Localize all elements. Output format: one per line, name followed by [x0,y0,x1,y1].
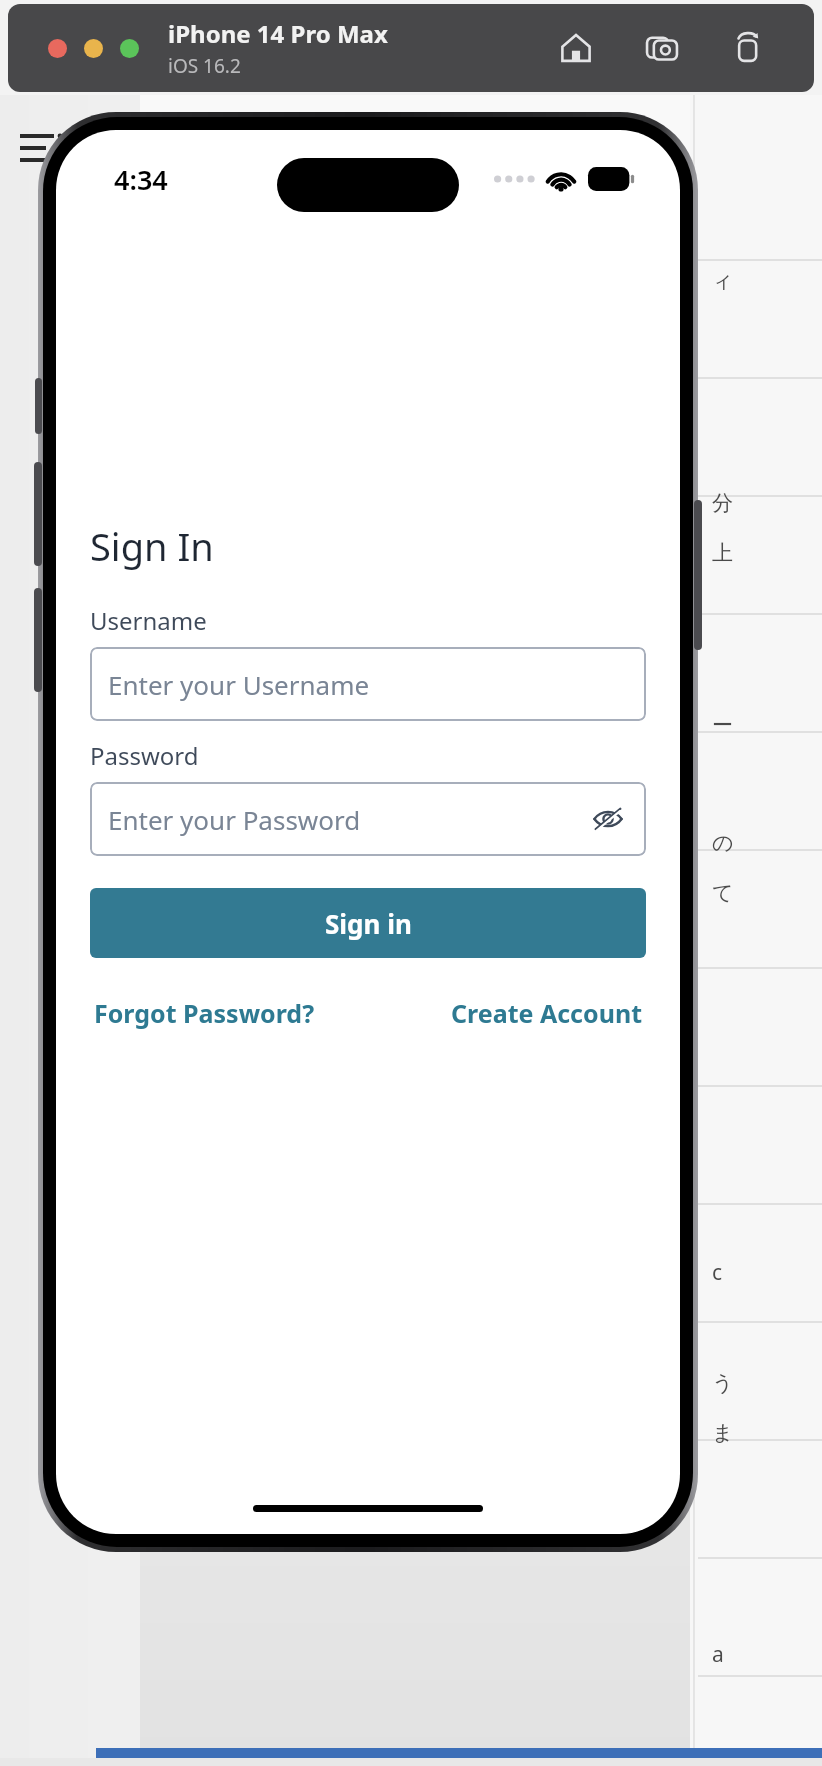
button[interactable]: Close [48,39,67,58]
staticText: 分 [712,490,733,516]
staticText: Forgot Password? [94,996,315,1030]
staticText: Enter your Username [108,667,370,702]
staticText: ま [712,1420,734,1446]
staticText: Password [90,739,199,772]
staticText: Username [90,604,207,637]
staticText: iOS 16.2 [168,53,241,79]
staticText: c [712,1258,723,1287]
staticText: a [712,1640,724,1669]
staticText: Enter your Password [108,802,361,837]
button[interactable]: Zoom [120,39,139,58]
staticText: ー [712,712,733,738]
staticText: ィ [712,268,734,294]
button[interactable]: Enter your Password [90,782,646,856]
staticText: う [712,1370,734,1396]
staticText: Sign In [90,520,214,572]
button[interactable]: Create Account [447,990,646,1036]
button[interactable]: Minimize [84,39,103,58]
button[interactable]: Forgot Password? [90,990,319,1036]
staticText: Sign in [325,906,412,941]
staticText: て [712,880,734,906]
staticText: iPhone 14 Pro Max [168,17,388,50]
button[interactable]: Sign in [90,888,646,958]
staticText: Create Account [451,996,642,1030]
staticText: の [712,830,734,856]
button[interactable]: Home [554,26,598,70]
button[interactable]: Screenshot [640,26,684,70]
staticText: 上 [712,540,733,566]
button[interactable]: Enter your Username [90,647,646,721]
button[interactable]: Show password [586,797,630,841]
button[interactable]: Rotate [726,26,770,70]
staticText: 4:34 [114,161,168,198]
